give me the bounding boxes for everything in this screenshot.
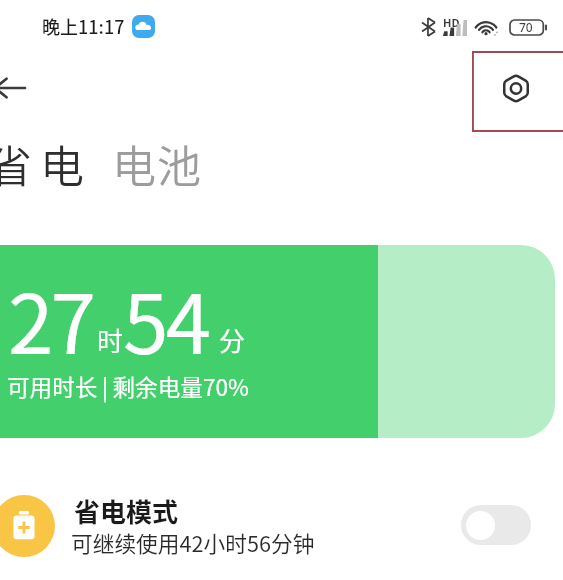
staticText: 27	[8, 259, 94, 378]
button[interactable]: 省电模式	[0, 478, 563, 574]
button[interactable]: 省	[0, 132, 96, 188]
button[interactable]: Back	[0, 62, 52, 114]
staticText: 电	[112, 132, 156, 188]
staticText: HD	[443, 15, 460, 30]
staticText: 池	[157, 132, 201, 188]
staticText: 70	[519, 19, 533, 34]
staticText: 54	[123, 259, 209, 378]
staticText: 时	[97, 321, 124, 359]
staticText: 省电模式	[74, 492, 179, 530]
staticText: 省	[0, 132, 32, 188]
button[interactable]: Settings	[490, 62, 542, 114]
button[interactable]: Power saving toggle	[461, 505, 531, 545]
staticText: 电	[40, 132, 84, 188]
staticText: 晚上11:17	[42, 13, 125, 39]
staticText: 可继续使用42小时56分钟	[71, 527, 315, 558]
staticText: 可用时长 | 剩余电量70%	[7, 370, 249, 403]
button[interactable]: 电	[112, 132, 210, 188]
button[interactable]: 27	[0, 245, 555, 438]
staticText: 分	[219, 321, 246, 359]
